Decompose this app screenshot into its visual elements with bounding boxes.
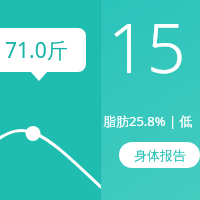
staticText: 身体报告 bbox=[134, 147, 186, 163]
button[interactable]: 身体报告 bbox=[119, 142, 200, 168]
button[interactable]: 156 bbox=[101, 0, 200, 200]
staticText: 156 bbox=[108, 0, 200, 106]
staticText: 71.0斤 bbox=[5, 36, 68, 65]
staticText: 脂肪25.8% | 低 bbox=[103, 112, 193, 130]
button[interactable]: 71.0斤 bbox=[0, 0, 100, 200]
